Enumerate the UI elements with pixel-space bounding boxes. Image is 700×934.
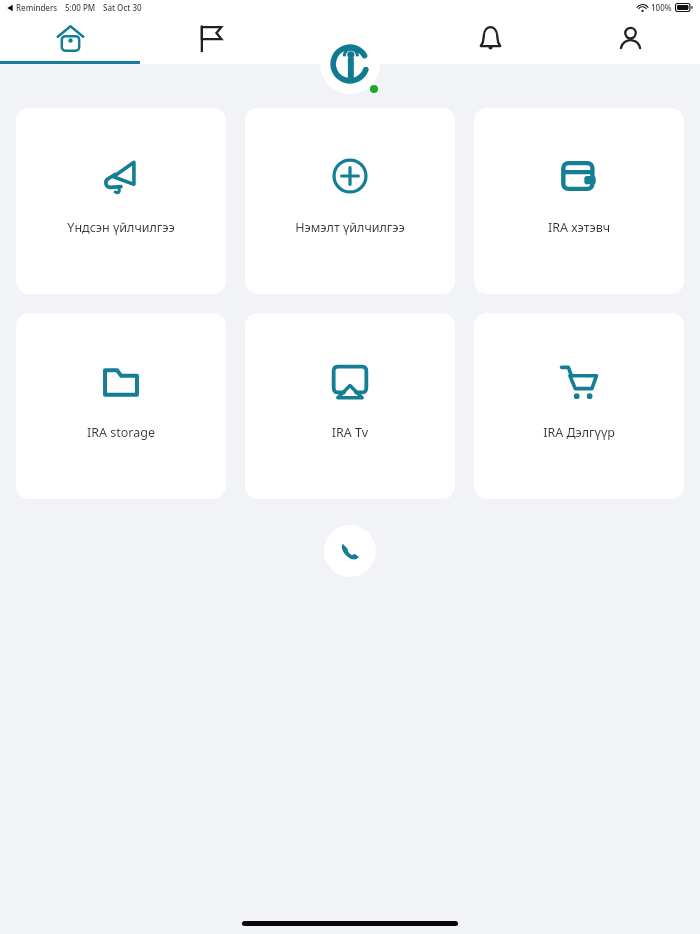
button[interactable]: IRA assistant (320, 34, 380, 94)
staticText: Reminders (16, 2, 58, 13)
button[interactable]: IRA Дэлгүүр (474, 313, 684, 499)
staticText: 100% (651, 2, 672, 13)
staticText: Sat Oct 30 (103, 2, 142, 13)
button[interactable]: Нэмэлт үйлчилгээ (245, 108, 455, 294)
button[interactable]: Notifications (420, 14, 560, 64)
button[interactable]: Profile (560, 14, 700, 64)
staticText: IRA storage (22, 424, 220, 441)
staticText: Үндсэн үйлчилгээ (22, 219, 220, 236)
staticText: IRA Дэлгүүр (480, 424, 678, 441)
button[interactable]: Reports (140, 14, 280, 64)
button[interactable]: Үндсэн үйлчилгээ (16, 108, 226, 294)
button[interactable]: IRA хэтэвч (474, 108, 684, 294)
button[interactable]: Home (0, 14, 140, 64)
staticText: IRA хэтэвч (480, 219, 678, 236)
button[interactable]: Call (324, 525, 376, 577)
button[interactable]: IRA storage (16, 313, 226, 499)
staticText: 5:00 PM (65, 2, 96, 13)
staticText: IRA Tv (251, 424, 449, 441)
staticText: Нэмэлт үйлчилгээ (251, 219, 449, 236)
button[interactable]: IRA Tv (245, 313, 455, 499)
